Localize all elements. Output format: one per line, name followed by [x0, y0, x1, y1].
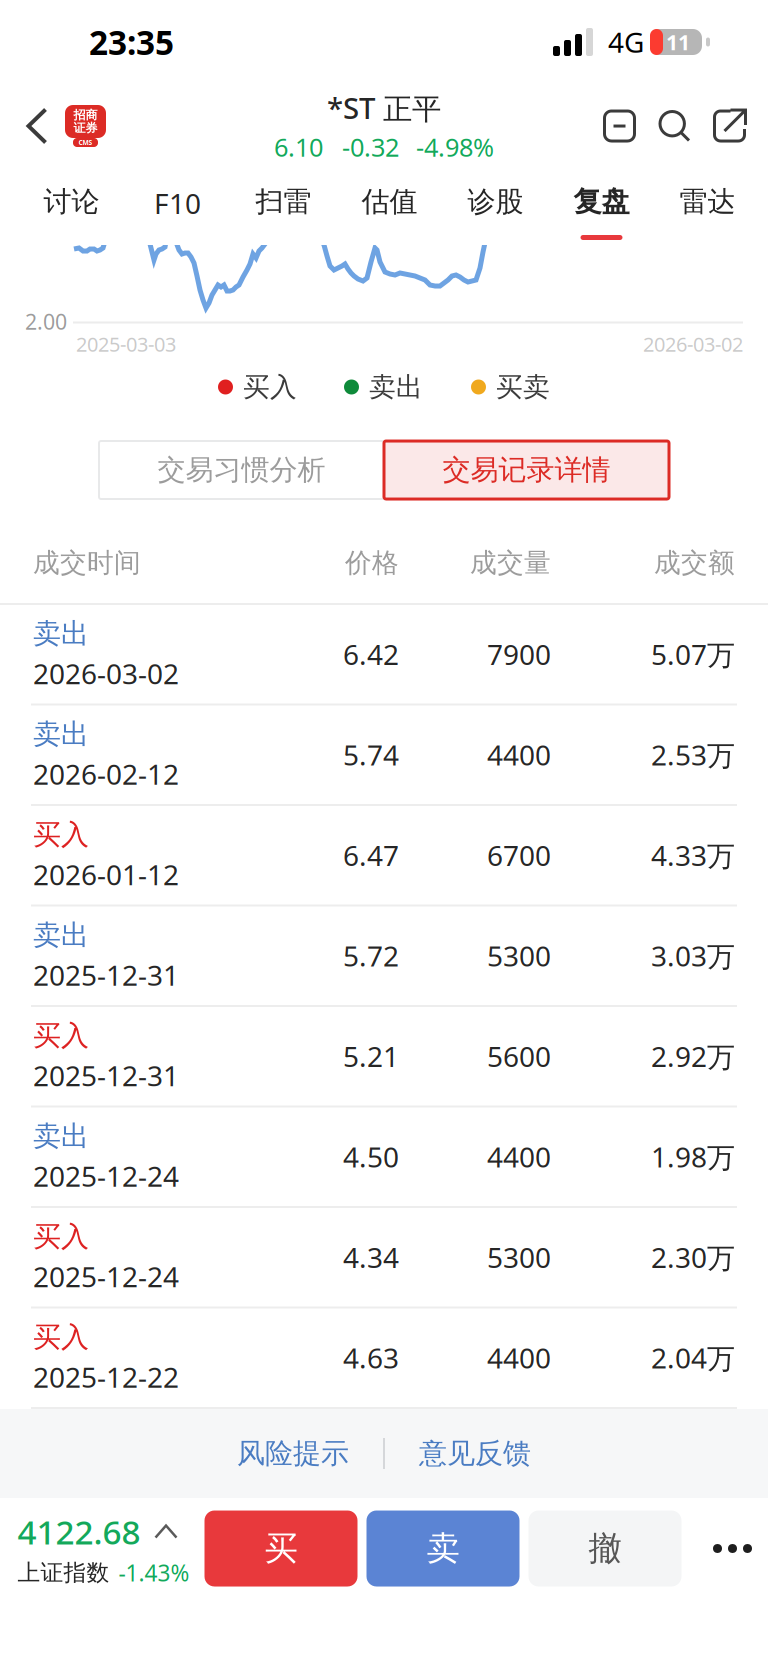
staticText: 7900 [487, 635, 551, 673]
staticText: 6.10 [274, 130, 323, 164]
staticText: 价格 [345, 546, 399, 580]
staticText: 交易记录详情 [442, 452, 610, 488]
staticText: 4400 [487, 1339, 551, 1377]
staticText: 4122.68 [17, 1509, 140, 1554]
staticText: 4.33万 [651, 836, 735, 874]
staticText: 2.30万 [651, 1238, 735, 1276]
button[interactable]: 意见反馈 [419, 1409, 531, 1498]
staticText: 复盘 [573, 184, 629, 219]
staticText: 卖 [426, 1527, 459, 1569]
staticText: 2.92万 [651, 1037, 735, 1075]
button[interactable]: 卖 [366, 1510, 519, 1586]
staticText: 证券 [73, 120, 97, 136]
staticText: 4400 [487, 736, 551, 774]
button[interactable]: Back [9, 84, 65, 168]
staticText: 买 [264, 1527, 297, 1569]
staticText: 1.98万 [651, 1138, 735, 1176]
staticText: 招商 [73, 107, 97, 122]
staticText: F10 [154, 184, 201, 222]
staticText: 4400 [487, 1138, 551, 1176]
staticText: 买入 [243, 370, 297, 404]
button[interactable]: 风险提示 [237, 1409, 349, 1498]
staticText: 撤 [588, 1527, 621, 1569]
staticText: 买入 [33, 1219, 89, 1254]
button[interactable]: 讨论 [18, 168, 124, 245]
staticText: 4G [608, 23, 644, 61]
staticText: 5300 [487, 937, 551, 975]
staticText: 诊股 [467, 184, 523, 219]
staticText: 4.63 [343, 1339, 399, 1377]
staticText: 2025-12-31 [33, 1056, 179, 1094]
staticText: 上证指数 [17, 1558, 109, 1587]
staticText: 4.34 [343, 1238, 399, 1276]
staticText: 讨论 [43, 184, 99, 219]
staticText: 4.50 [343, 1138, 399, 1176]
staticText: 2026-03-02 [643, 330, 743, 358]
staticText: 意见反馈 [419, 1436, 531, 1471]
button[interactable]: 雷达 [654, 168, 760, 245]
button[interactable]: 诊股 [442, 168, 548, 245]
staticText: 风险提示 [237, 1436, 349, 1471]
staticText: 5300 [487, 1238, 551, 1276]
staticText: 2.04万 [651, 1339, 735, 1377]
staticText: -4.98% [416, 130, 494, 164]
staticText: 估值 [361, 184, 417, 219]
staticText: *ST 正平 [327, 88, 441, 128]
staticText: -0.32 [342, 130, 399, 164]
staticText: 扫雷 [255, 184, 311, 219]
staticText: 5.72 [343, 937, 399, 975]
button[interactable]: 交易习惯分析 [99, 441, 384, 499]
staticText: CMS [78, 138, 92, 147]
staticText: 5.21 [343, 1037, 399, 1075]
staticText: 5.07万 [651, 635, 735, 673]
button[interactable]: F10 [124, 168, 230, 245]
staticText: 2025-12-31 [33, 956, 179, 994]
staticText: 2026-01-12 [33, 855, 179, 893]
button[interactable]: Share [702, 84, 757, 168]
staticText: 交易习惯分析 [157, 452, 325, 488]
staticText: 2.53万 [651, 736, 735, 774]
staticText: 卖出 [33, 716, 89, 752]
staticText: 23:35 [89, 19, 174, 65]
staticText: 成交额 [654, 546, 735, 580]
staticText: 成交量 [470, 546, 551, 580]
staticText: 2026-02-12 [33, 755, 179, 793]
staticText: -1.43% [118, 1557, 189, 1588]
staticText: 买入 [33, 817, 89, 852]
staticText: 6.47 [343, 836, 399, 874]
staticText: 买入 [33, 1018, 89, 1053]
staticText: 2025-12-24 [33, 1157, 179, 1195]
staticText: 买入 [33, 1319, 89, 1355]
staticText: 3.03万 [651, 937, 735, 975]
staticText: 买卖 [496, 370, 550, 404]
staticText: 2.00 [25, 307, 67, 336]
button[interactable]: 撤 [528, 1510, 681, 1586]
button[interactable]: 扫雷 [230, 168, 336, 245]
staticText: 2026-03-02 [33, 654, 179, 692]
staticText: 5.74 [343, 736, 399, 774]
staticText: 2025-12-22 [33, 1358, 179, 1396]
button[interactable]: More [689, 1510, 768, 1586]
staticText: 卖出 [369, 370, 423, 404]
staticText: 2025-03-03 [76, 330, 176, 358]
staticText: 6700 [487, 836, 551, 874]
button[interactable]: 估值 [336, 168, 442, 245]
button[interactable]: Search [647, 84, 702, 168]
button[interactable]: 复盘 [548, 168, 654, 245]
staticText: 2025-12-24 [33, 1257, 179, 1295]
staticText: 卖出 [33, 917, 89, 953]
staticText: 雷达 [679, 184, 735, 219]
staticText: 成交时间 [33, 546, 141, 580]
staticText: 6.42 [343, 635, 399, 673]
button[interactable]: Minimize [592, 84, 647, 168]
staticText: 卖出 [33, 616, 89, 651]
staticText: 5600 [487, 1037, 551, 1075]
staticText: 卖出 [33, 1118, 89, 1154]
staticText: 11 [666, 27, 690, 57]
button[interactable]: 买 [204, 1510, 357, 1586]
button[interactable]: 交易记录详情 [384, 441, 669, 499]
